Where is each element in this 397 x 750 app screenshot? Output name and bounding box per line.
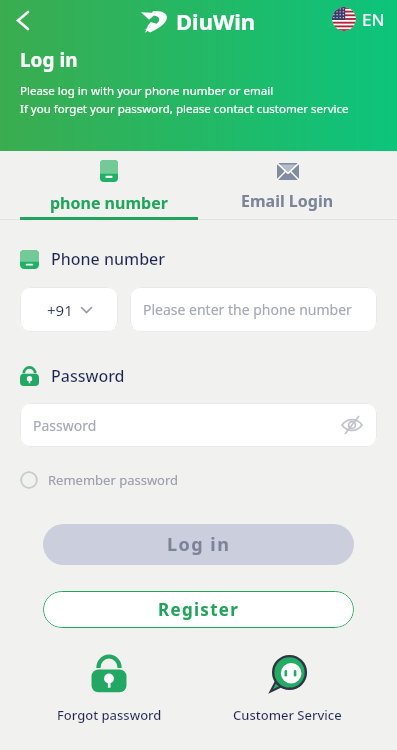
staticText: Password [33,416,342,435]
button[interactable]: Customer Service [198,655,377,724]
staticText: Log in [167,532,231,557]
staticText: Register [158,598,240,621]
button[interactable]: Remember password [20,471,179,489]
staticText: Email Login [241,190,334,212]
staticText: Please log in with your phone number or … [20,83,274,99]
button[interactable]: Forgot password [20,655,198,724]
button[interactable]: Email Login [198,151,377,220]
button[interactable] [6,4,38,36]
staticText: Customer Service [233,706,342,724]
staticText: If you forget your password, please cont… [20,101,349,117]
staticText: Log in [20,47,78,73]
staticText: Forgot password [57,706,162,724]
button[interactable]: Register [43,591,354,628]
staticText: Phone number [51,248,166,270]
staticText: Remember password [48,471,179,489]
staticText: phone number [50,192,168,214]
staticText: Password [51,365,125,387]
button[interactable]: Please enter the phone number [130,287,377,332]
button[interactable]: +91 [20,287,118,332]
staticText: EN [362,8,385,31]
staticText: Please enter the phone number [143,300,352,319]
staticText: DiuWin [176,6,256,36]
button[interactable]: Password [20,403,377,447]
button[interactable]: Log in [43,524,354,565]
staticText: +91 [47,300,73,320]
button[interactable]: EN [332,7,385,31]
button[interactable]: phone number [20,151,198,220]
